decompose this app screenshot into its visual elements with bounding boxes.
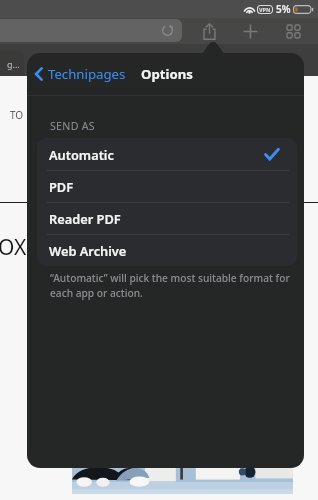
button[interactable]: New tab: [240, 18, 261, 44]
staticText: g...: [7, 58, 20, 70]
staticText: 5%: [276, 2, 291, 16]
button[interactable]: Technipages: [31, 65, 126, 83]
staticText: SEND AS: [50, 119, 95, 133]
staticText: PDF: [49, 178, 74, 195]
staticText: “Automatic” will pick the most suitable …: [50, 271, 302, 300]
staticText: Automatic: [49, 146, 114, 163]
button[interactable]: Show tabs: [283, 18, 304, 44]
button[interactable]: Share: [199, 18, 220, 44]
staticText: TO: [10, 108, 24, 122]
button[interactable]: Web Archive: [37, 234, 297, 266]
button[interactable]: Automatic: [37, 138, 297, 170]
staticText: Options: [141, 65, 193, 83]
button[interactable]: Address bar: [0, 19, 182, 42]
button[interactable]: PDF: [37, 170, 297, 202]
button[interactable]: g...: [0, 51, 24, 76]
staticText: VPN: [259, 6, 271, 13]
staticText: Technipages: [48, 65, 126, 83]
staticText: Reader PDF: [49, 210, 121, 227]
staticText: Web Archive: [49, 242, 127, 259]
staticText: OX,: [0, 233, 32, 262]
button[interactable]: Reader PDF: [37, 202, 297, 234]
